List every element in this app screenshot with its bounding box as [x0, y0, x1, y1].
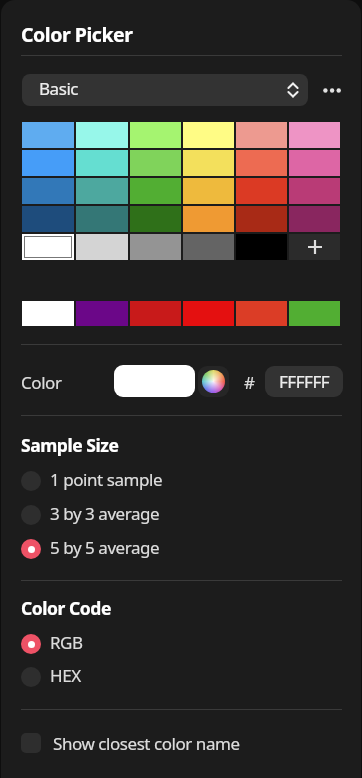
staticText: RGB	[50, 631, 83, 654]
button[interactable]: Current color	[114, 365, 195, 397]
staticText: 3 by 3 average	[50, 502, 160, 525]
button[interactable]: More options	[314, 76, 343, 105]
button[interactable]: 5 by 5 average	[21, 533, 341, 565]
staticText: #	[244, 371, 255, 394]
staticText: Show closest color name	[53, 732, 240, 755]
staticText: Basic	[39, 77, 79, 100]
staticText: Sample Size	[21, 433, 119, 457]
staticText: Color	[21, 371, 62, 394]
button[interactable]: Add color	[289, 234, 340, 260]
staticText: Color Picker	[21, 21, 133, 48]
button[interactable]: 3 by 3 average	[21, 499, 341, 531]
staticText: 1 point sample	[50, 468, 163, 491]
button[interactable]	[22, 234, 74, 260]
button[interactable]: RGB	[21, 628, 341, 660]
staticText: 5 by 5 average	[50, 536, 160, 559]
button[interactable]: FFFFFF	[265, 366, 343, 397]
button[interactable]: Show closest color name	[21, 727, 341, 759]
staticText: FFFFFF	[279, 370, 330, 393]
button[interactable]: Color wheel	[198, 366, 229, 397]
staticText: HEX	[50, 664, 81, 687]
button[interactable]: Basic	[22, 74, 308, 106]
staticText: Color Code	[21, 596, 111, 620]
button[interactable]: 1 point sample	[21, 465, 341, 497]
button[interactable]: HEX	[21, 661, 341, 693]
